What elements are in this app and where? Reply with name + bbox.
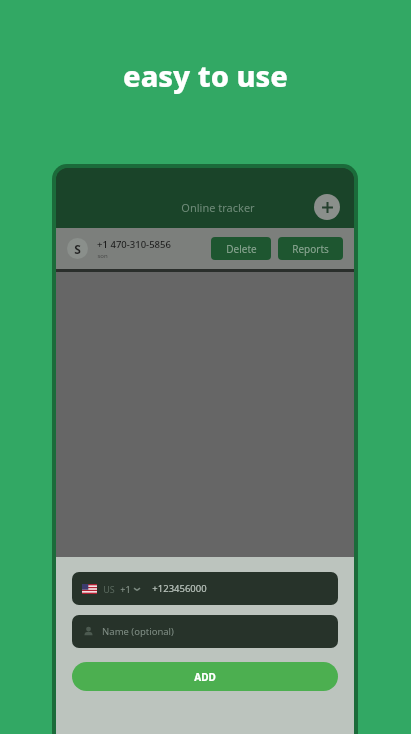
button[interactable]: Add number bbox=[314, 194, 340, 220]
button[interactable]: Name (optional) bbox=[72, 615, 338, 648]
staticText: Reports bbox=[292, 242, 329, 256]
button[interactable]: ADD bbox=[72, 662, 338, 691]
staticText: +1 bbox=[120, 583, 131, 595]
staticText: Delete bbox=[226, 242, 257, 256]
staticText: Online tracker bbox=[181, 200, 255, 215]
button[interactable]: US bbox=[72, 572, 338, 605]
button[interactable]: Delete bbox=[211, 237, 271, 260]
button[interactable]: Reports bbox=[278, 237, 343, 260]
staticText: +1 470-310-5856 bbox=[97, 238, 171, 251]
staticText: S bbox=[74, 241, 81, 257]
staticText: +123456000 bbox=[152, 582, 207, 595]
staticText: son bbox=[97, 252, 108, 260]
staticText: US bbox=[103, 583, 115, 595]
button[interactable]: S bbox=[56, 228, 354, 269]
staticText: ADD bbox=[194, 670, 216, 684]
staticText: easy to use bbox=[123, 56, 288, 95]
staticText: Name (optional) bbox=[102, 625, 174, 638]
